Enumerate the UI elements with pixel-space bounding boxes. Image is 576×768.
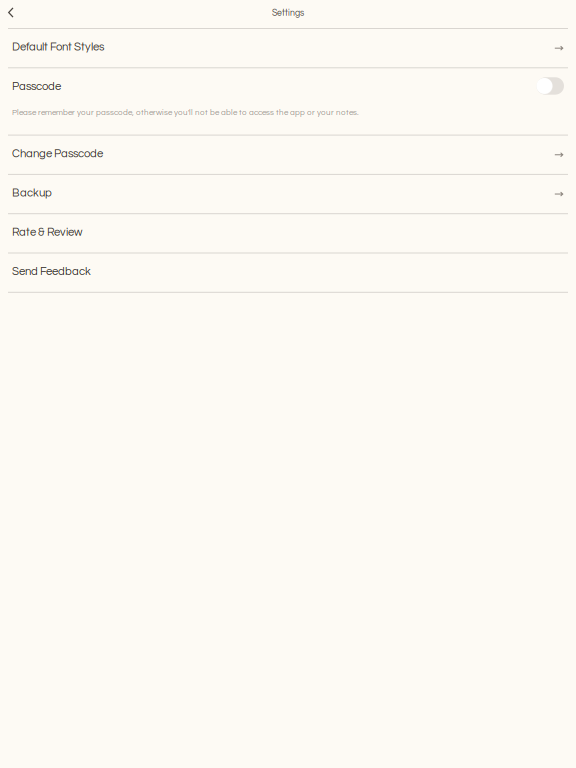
- staticText: Send Feedback: [12, 266, 91, 277]
- staticText: Change Passcode: [12, 148, 103, 160]
- button[interactable]: Send Feedback: [0, 253, 576, 292]
- button[interactable]: Change Passcode: [0, 136, 576, 174]
- staticText: Default Font Styles: [12, 41, 104, 53]
- staticText: Rate & Review: [12, 226, 82, 238]
- staticText: Please remember your passcode, otherwise…: [12, 108, 359, 117]
- button[interactable]: Backup: [0, 175, 576, 213]
- button[interactable]: Rate & Review: [0, 214, 576, 252]
- button[interactable]: Passcode: [0, 68, 576, 107]
- staticText: Backup: [12, 187, 52, 199]
- staticText: Passcode: [12, 81, 61, 92]
- button[interactable]: Back: [0, 0, 24, 28]
- staticText: Settings: [272, 8, 304, 17]
- button[interactable]: Default Font Styles: [0, 29, 576, 67]
